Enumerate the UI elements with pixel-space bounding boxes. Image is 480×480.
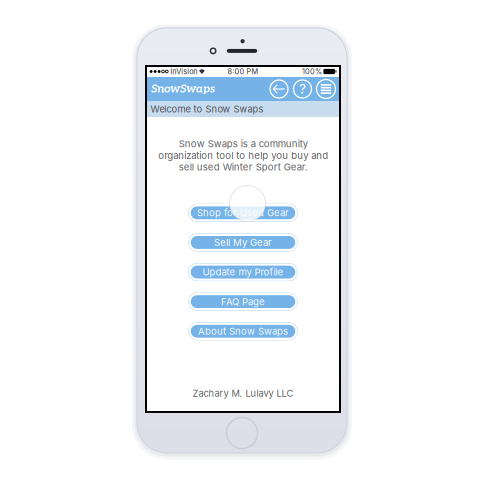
button[interactable]: Update my Profile <box>188 263 298 281</box>
button[interactable]: Shop for Used Gear <box>188 204 298 222</box>
staticText: Snow Swaps is a community organization t… <box>158 138 328 173</box>
button[interactable]: FAQ Page <box>188 293 298 311</box>
staticText: Sell My Gear <box>214 237 272 248</box>
staticText: 100% <box>302 67 322 76</box>
staticText: About Snow Swaps <box>198 325 288 337</box>
staticText: 8:00 PM <box>227 67 258 76</box>
button[interactable]: Sell My Gear <box>188 233 298 251</box>
button[interactable]: Menu <box>315 78 337 100</box>
staticText: SnowSwaps <box>151 82 215 96</box>
staticText: Shop for Used Gear <box>197 207 289 219</box>
staticText: InVision <box>170 67 197 76</box>
staticText: Welcome to Snow Swaps <box>150 103 263 115</box>
button[interactable]: Help <box>291 78 313 100</box>
staticText: Zachary M. Lulavy LLC <box>192 388 293 399</box>
staticText: Update my Profile <box>202 266 283 278</box>
staticText: ? <box>299 81 306 97</box>
staticText: FAQ Page <box>221 296 265 307</box>
button[interactable]: About Snow Swaps <box>188 322 298 340</box>
button[interactable]: Back <box>268 78 290 100</box>
